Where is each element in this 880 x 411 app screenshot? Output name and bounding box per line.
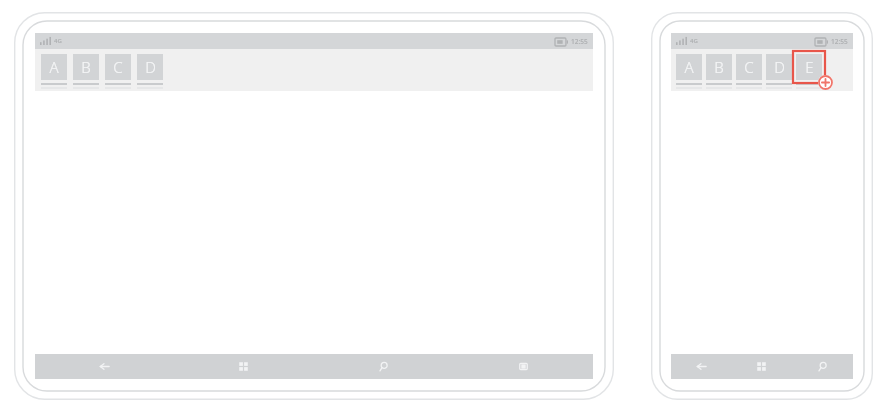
button[interactable]: Search bbox=[792, 354, 853, 379]
button[interactable]: Recent apps bbox=[453, 354, 593, 379]
staticText: 12:55 bbox=[831, 37, 848, 46]
staticText: 12:55 bbox=[571, 37, 588, 46]
staticText: A bbox=[49, 57, 59, 77]
button[interactable]: C bbox=[105, 54, 131, 80]
button[interactable]: D bbox=[766, 54, 792, 80]
button[interactable]: C bbox=[736, 54, 762, 80]
staticText: B bbox=[714, 57, 724, 77]
button[interactable]: D bbox=[137, 54, 163, 80]
button[interactable]: A bbox=[41, 54, 67, 80]
staticText: 4G bbox=[54, 37, 62, 45]
button[interactable]: A bbox=[676, 54, 702, 80]
button[interactable]: Start bbox=[174, 354, 313, 379]
button[interactable]: Start bbox=[731, 354, 792, 379]
button[interactable]: Back bbox=[671, 354, 731, 379]
staticText: E bbox=[805, 57, 814, 77]
button[interactable]: B bbox=[73, 54, 99, 80]
staticText: D bbox=[774, 57, 785, 77]
button[interactable]: B bbox=[706, 54, 732, 80]
staticText: C bbox=[113, 57, 123, 77]
staticText: A bbox=[684, 57, 694, 77]
staticText: D bbox=[145, 57, 156, 77]
staticText: 4G bbox=[690, 37, 698, 45]
button[interactable]: Add tab bbox=[818, 75, 833, 90]
staticText: C bbox=[744, 57, 754, 77]
button[interactable]: E bbox=[796, 54, 822, 80]
staticText: B bbox=[81, 57, 91, 77]
